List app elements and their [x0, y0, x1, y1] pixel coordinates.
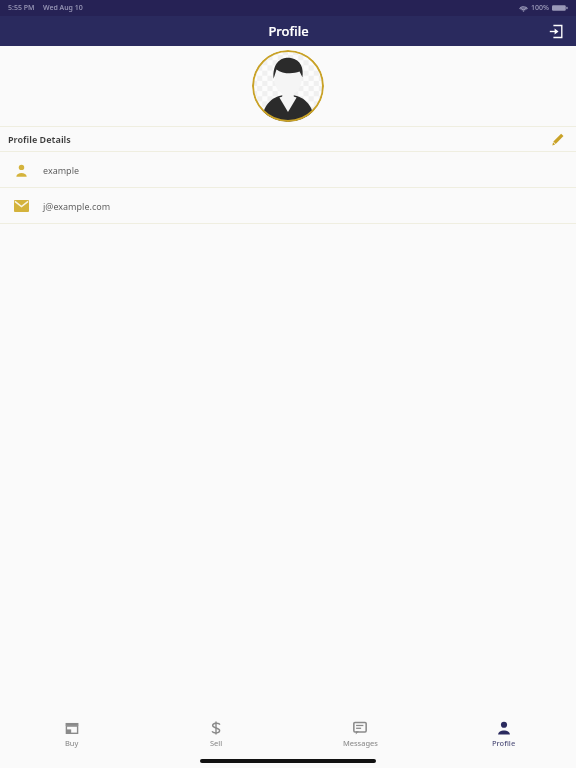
button[interactable]: example [0, 152, 576, 187]
button[interactable]: Messages [288, 714, 432, 754]
staticText: Buy [65, 738, 79, 748]
button[interactable]: Log out [542, 18, 568, 44]
staticText: 5:55 PM [8, 3, 35, 13]
button[interactable]: Buy [0, 714, 144, 754]
button[interactable]: Sell [144, 714, 288, 754]
button[interactable]: Edit profile [546, 128, 568, 150]
button[interactable]: j@example.com [0, 188, 576, 223]
staticText: Messages [343, 738, 378, 748]
button[interactable]: Profile [432, 714, 576, 754]
staticText: Profile [268, 22, 309, 40]
staticText: Profile [492, 738, 516, 748]
staticText: 100% [531, 3, 549, 13]
staticText: Profile Details [8, 133, 71, 145]
staticText: Sell [210, 738, 223, 748]
button[interactable]: Profile picture [252, 50, 324, 122]
staticText: Wed Aug 10 [43, 3, 83, 13]
staticText: example [43, 164, 80, 176]
staticText: j@example.com [43, 200, 111, 212]
